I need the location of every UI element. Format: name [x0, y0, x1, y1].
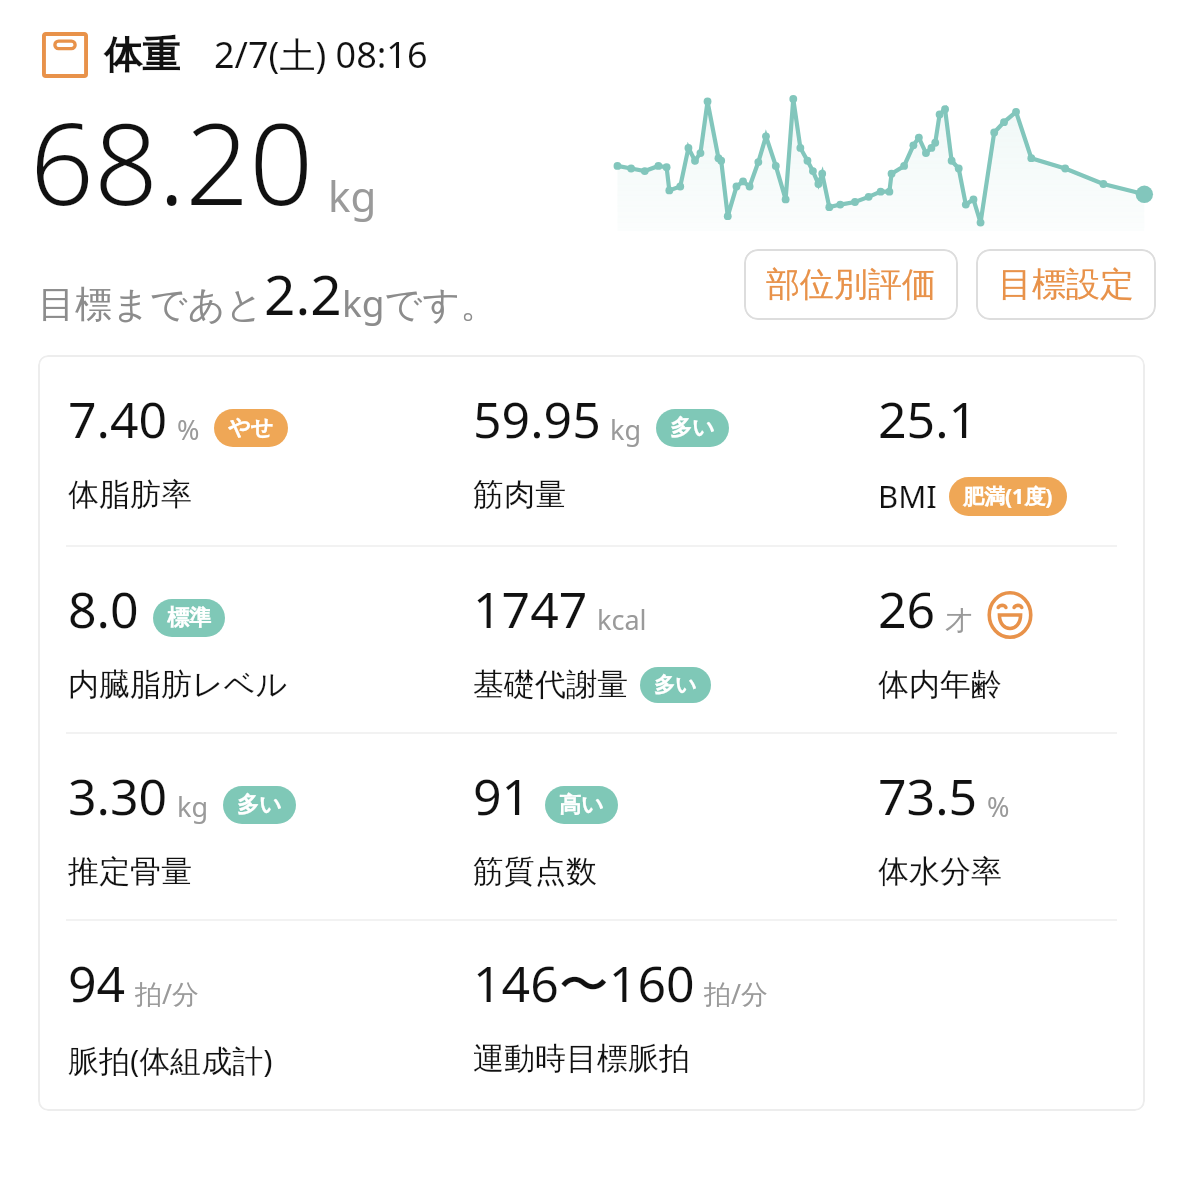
staticText: 94: [68, 949, 126, 1017]
staticText: kcal: [597, 601, 647, 638]
other: 体重アイコン: [42, 32, 88, 78]
staticText: 体水分率: [878, 852, 1002, 891]
staticText: 推定骨量: [68, 852, 192, 891]
staticText: 肥満(1度): [963, 482, 1053, 511]
staticText: 25.1: [878, 385, 978, 453]
staticText: 基礎代謝量: [473, 665, 628, 704]
staticText: 91: [473, 762, 531, 830]
staticText: 拍/分: [704, 975, 769, 1012]
staticText: 拍/分: [135, 975, 200, 1012]
staticText: 体脂肪率: [68, 475, 192, 514]
staticText: 標準: [167, 604, 211, 632]
staticText: 8.0: [68, 575, 139, 643]
staticText: 才: [945, 604, 972, 638]
staticText: 7.40: [68, 385, 168, 453]
staticText: kgです。: [342, 277, 498, 328]
staticText: 73.5: [878, 762, 978, 830]
staticText: 146〜160: [473, 949, 695, 1017]
staticText: 内臓脂肪レベル: [68, 665, 288, 704]
staticText: BMI: [878, 475, 937, 517]
staticText: kg: [610, 411, 642, 448]
staticText: 体重: [104, 31, 180, 79]
staticText: 運動時目標脈拍: [473, 1039, 690, 1078]
staticText: 26: [878, 575, 936, 643]
staticText: %: [987, 788, 1010, 825]
staticText: kg: [177, 788, 209, 825]
staticText: 2/7(土) 08:16: [214, 30, 428, 79]
staticText: 2.2: [264, 256, 342, 331]
staticText: 多い: [237, 791, 282, 819]
staticText: 1747: [473, 575, 588, 643]
button[interactable]: 目標設定: [976, 249, 1156, 320]
staticText: 目標設定: [998, 263, 1134, 306]
staticText: 多い: [654, 672, 697, 698]
staticText: 3.30: [68, 762, 168, 830]
staticText: 筋肉量: [473, 475, 566, 514]
staticText: 多い: [670, 414, 715, 442]
staticText: 脈拍(体組成計): [68, 1039, 273, 1081]
other: good: [986, 591, 1034, 639]
staticText: 体内年齢: [878, 665, 1002, 704]
staticText: 59.95: [473, 385, 601, 453]
staticText: 68.20: [30, 85, 314, 238]
staticText: kg: [328, 167, 377, 224]
button[interactable]: 部位別評価: [744, 249, 958, 320]
staticText: やせ: [228, 414, 274, 442]
staticText: 高い: [559, 791, 604, 819]
staticText: 筋質点数: [473, 852, 597, 891]
staticText: %: [177, 411, 200, 448]
staticText: 目標まであと: [38, 281, 264, 328]
staticText: 部位別評価: [766, 263, 936, 306]
